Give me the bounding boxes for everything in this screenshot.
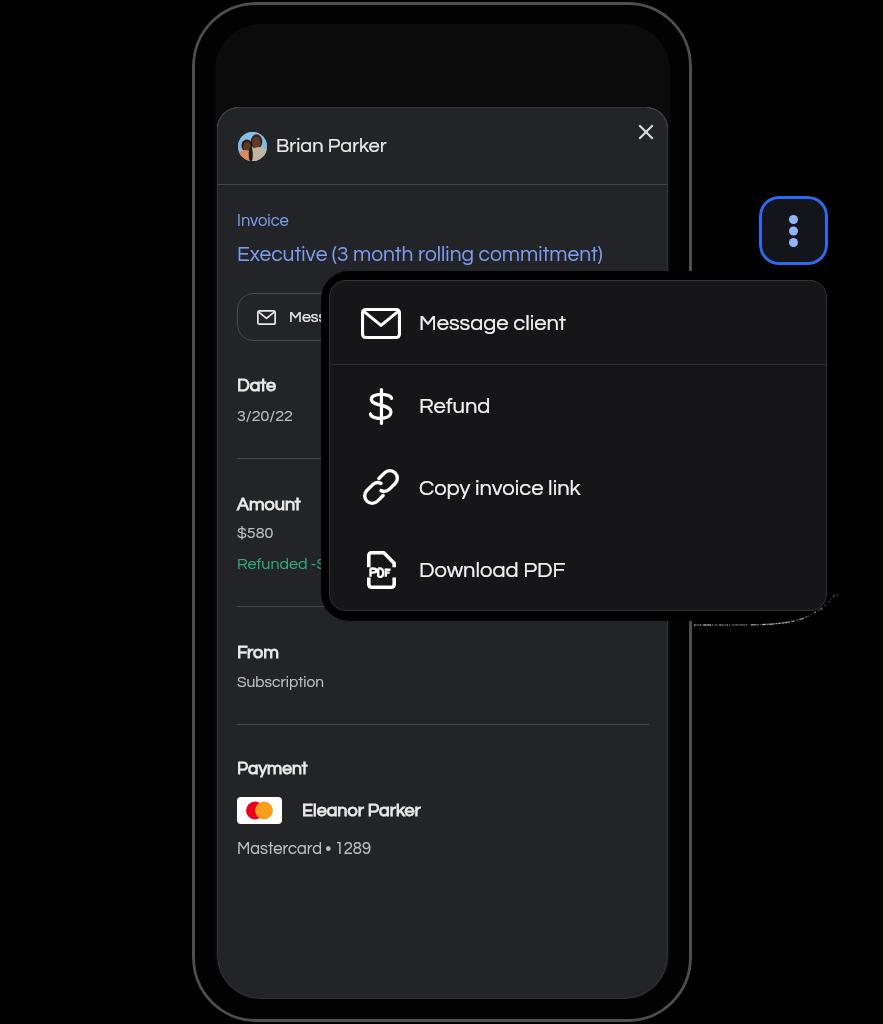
staticText: Copy invoice link: [419, 477, 581, 500]
staticText: Message client: [419, 312, 566, 335]
button[interactable]: Message client: [329, 283, 827, 363]
staticText: Refunded -$580: [237, 556, 353, 572]
button[interactable]: Message client: [237, 293, 416, 341]
staticText: Eleanor Parker: [302, 801, 421, 820]
staticText: Brian Parker: [276, 136, 387, 157]
button[interactable]: Download PDF: [329, 530, 827, 610]
button[interactable]: Close: [624, 110, 668, 154]
staticText: Payment: [237, 760, 308, 778]
staticText: 3/20/22: [237, 408, 293, 424]
staticText: Executive (3 month rolling commitment): [237, 244, 603, 266]
button[interactable]: Copy invoice link: [329, 448, 827, 528]
staticText: Download PDF: [419, 559, 566, 582]
button[interactable]: Refund: [329, 366, 827, 446]
button[interactable]: Invoice: [237, 205, 607, 273]
staticText: Invoice: [237, 212, 289, 229]
staticText: Mastercard • 1289: [237, 840, 371, 857]
staticText: $580: [237, 525, 274, 541]
staticText: Refund: [419, 395, 491, 418]
staticText: Message client: [289, 309, 396, 325]
staticText: From: [237, 643, 279, 662]
staticText: Subscription: [237, 674, 324, 690]
button[interactable]: More options: [759, 196, 828, 265]
staticText: Date: [237, 376, 277, 395]
staticText: Amount: [237, 495, 301, 514]
